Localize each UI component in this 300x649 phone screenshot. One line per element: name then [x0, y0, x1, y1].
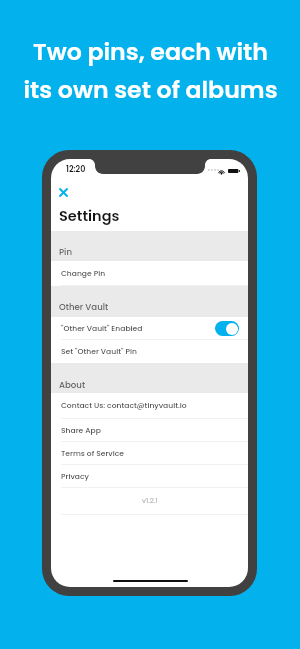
button[interactable]: Terms of Service — [51, 442, 248, 465]
staticText: Set "Other Vault" Pin — [61, 346, 137, 357]
staticText: Change Pin — [61, 268, 106, 279]
staticText: Two pins, each with — [33, 35, 268, 68]
staticText: Pin — [59, 246, 72, 258]
button[interactable]: Set "Other Vault" Pin — [51, 340, 248, 363]
staticText: Settings — [59, 206, 120, 226]
staticText: Privacy — [61, 471, 89, 482]
staticText: Share App — [61, 425, 101, 436]
staticText: Other Vault — [59, 301, 109, 313]
button[interactable]: Change Pin — [51, 261, 248, 286]
staticText: Contact Us: contact@tinyvault.io — [61, 400, 187, 411]
staticText: About — [59, 379, 86, 391]
staticText: its own set of albums — [23, 73, 278, 106]
staticText: 12:20 — [66, 164, 86, 175]
button[interactable]: Contact Us: contact@tinyvault.io — [51, 393, 248, 419]
staticText: v1.2.1 — [142, 496, 158, 506]
button[interactable]: Share App — [51, 419, 248, 442]
button[interactable]: Privacy — [51, 465, 248, 488]
button[interactable]: "Other Vault" Enabled — [51, 317, 248, 340]
staticText: "Other Vault" Enabled — [61, 323, 143, 334]
staticText: Terms of Service — [61, 448, 124, 459]
button[interactable]: Close — [53, 182, 74, 203]
